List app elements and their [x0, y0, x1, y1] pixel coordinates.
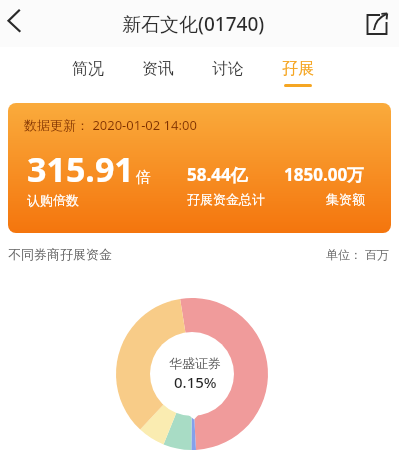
button[interactable]: 资讯: [123, 47, 193, 93]
staticText: 58.44亿: [187, 163, 248, 186]
staticText: 集资额: [326, 191, 365, 207]
staticText: 1850.00万: [284, 163, 365, 186]
staticText: 孖展资金总计: [187, 191, 265, 207]
staticText: 简况: [72, 59, 104, 79]
button[interactable]: [0, 2, 44, 46]
staticText: 0.15%: [174, 372, 217, 392]
button[interactable]: 孖展: [263, 47, 333, 93]
button[interactable]: [355, 2, 399, 46]
button[interactable]: 简况: [53, 47, 123, 93]
staticText: 不同券商孖展资金: [8, 246, 112, 262]
staticText: 认购倍数: [27, 192, 79, 208]
button[interactable]: 数据更新： 2020-01-02 14:00: [8, 103, 391, 233]
staticText: 单位： 百万: [326, 246, 390, 262]
staticText: 315.91: [27, 146, 134, 192]
staticText: 新石文化(01740): [122, 11, 265, 37]
staticText: 孖展: [282, 59, 314, 79]
staticText: 资讯: [142, 59, 174, 79]
staticText: 数据更新： 2020-01-02 14:00: [24, 116, 197, 134]
staticText: 讨论: [212, 59, 244, 79]
staticText: 倍: [136, 168, 151, 187]
staticText: 华盛证券: [169, 355, 221, 371]
button[interactable]: 讨论: [193, 47, 263, 93]
